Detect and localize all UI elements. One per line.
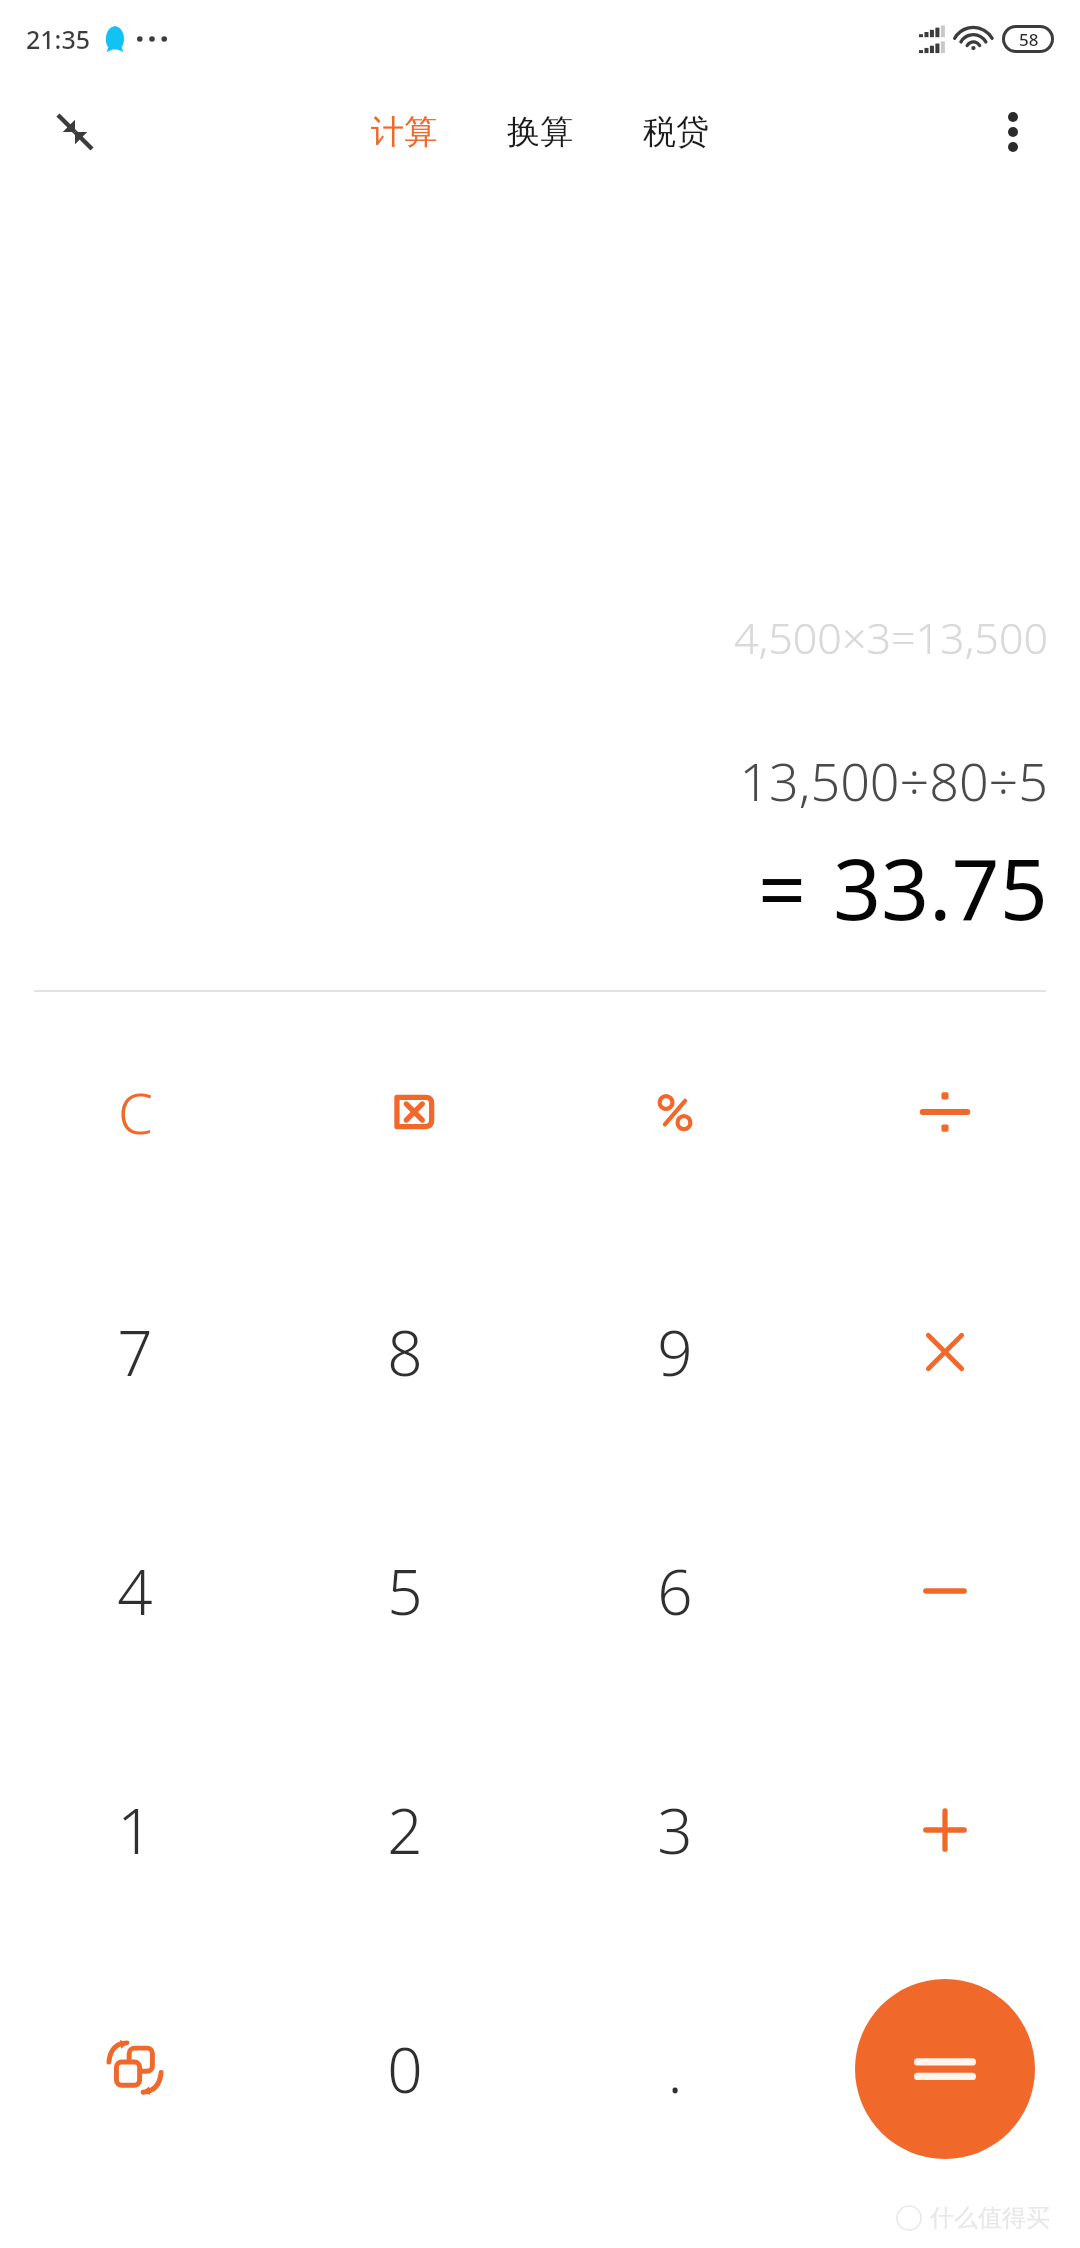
button[interactable]: Equals (855, 1979, 1035, 2159)
staticText: 2 (387, 1788, 423, 1872)
staticText: 13,500÷80÷5 (739, 745, 1048, 816)
staticText: C (118, 1074, 153, 1150)
staticText: 什么值得买 (930, 2203, 1050, 2233)
staticText: 58 (1019, 28, 1039, 50)
staticText: 计算 (371, 111, 437, 153)
staticText: 3 (657, 1788, 693, 1872)
button[interactable]: Convert (0, 1949, 270, 2188)
button[interactable]: 换算 (483, 101, 597, 163)
button[interactable]: 8 (270, 1232, 540, 1471)
button[interactable]: 税贷 (619, 101, 733, 163)
staticText: 4 (117, 1549, 153, 1633)
staticText: = (758, 830, 807, 944)
staticText: 换算 (507, 111, 573, 153)
button[interactable]: Plus (810, 1710, 1080, 1949)
button[interactable]: 9 (540, 1232, 810, 1471)
staticText: . (667, 2027, 683, 2111)
staticText: 8 (387, 1310, 423, 1394)
button[interactable]: Collapse (42, 99, 108, 165)
staticText: 5 (387, 1549, 423, 1633)
button[interactable]: Minus (810, 1471, 1080, 1710)
staticText: 7 (117, 1310, 153, 1394)
staticText: 33.75 (833, 830, 1048, 944)
button[interactable]: 3 (540, 1710, 810, 1949)
button[interactable]: 5 (270, 1471, 540, 1710)
staticText: 4,500×3=13,500 (734, 608, 1048, 667)
staticText: 9 (657, 1310, 693, 1394)
staticText: 税贷 (643, 111, 709, 153)
button[interactable]: 计算 (347, 101, 461, 163)
staticText: 1 (117, 1788, 153, 1872)
button[interactable]: 1 (0, 1710, 270, 1949)
button[interactable]: 4 (0, 1471, 270, 1710)
button[interactable]: C (0, 992, 270, 1232)
button[interactable]: 2 (270, 1710, 540, 1949)
button[interactable]: Backspace (270, 992, 540, 1232)
button[interactable]: . (540, 1949, 810, 2188)
button[interactable]: 7 (0, 1232, 270, 1471)
button[interactable]: Divide (810, 992, 1080, 1232)
button[interactable]: 6 (540, 1471, 810, 1710)
staticText: 6 (657, 1549, 693, 1633)
staticText: 0 (387, 2027, 423, 2111)
button[interactable]: Multiply (810, 1232, 1080, 1471)
staticText: 21:35 (26, 22, 91, 56)
button[interactable]: Percent (540, 992, 810, 1232)
button[interactable]: 0 (270, 1949, 540, 2188)
button[interactable]: More options (982, 101, 1044, 163)
